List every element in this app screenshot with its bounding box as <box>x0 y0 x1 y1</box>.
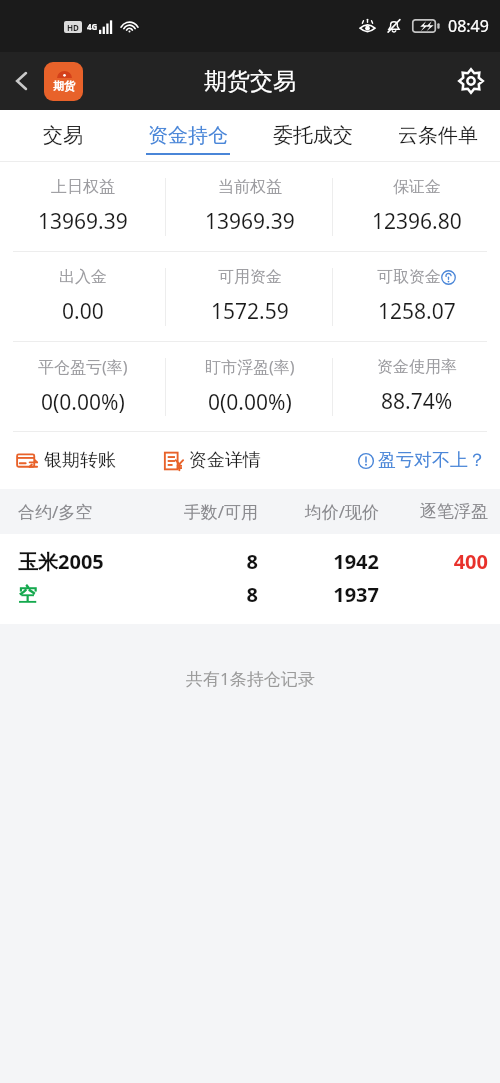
staticText: 盈亏对不上？ <box>378 449 486 472</box>
staticText: 可取资金 <box>377 267 441 287</box>
button[interactable]: 期货 app icon <box>44 62 83 101</box>
button[interactable]: 交易 <box>0 110 125 162</box>
button[interactable]: 资金详情 <box>162 432 323 489</box>
button[interactable]: 盈亏对不上？ <box>323 432 500 489</box>
staticText: HD <box>67 22 79 33</box>
staticText: 玉米2005 <box>18 548 145 575</box>
staticText: 委托成交 <box>273 123 353 148</box>
staticText: 期货 <box>53 79 75 93</box>
staticText: 0.00 <box>62 297 104 326</box>
staticText: 交易 <box>43 123 83 148</box>
staticText: 平仓盈亏(率) <box>38 356 128 378</box>
button[interactable]: Settings <box>442 52 500 110</box>
staticText: 1572.59 <box>211 297 289 326</box>
staticText: 盯市浮盈(率) <box>205 356 295 378</box>
staticText: 期货交易 <box>204 67 296 96</box>
button[interactable]: 玉米2005 <box>0 534 500 624</box>
staticText: 08:49 <box>448 15 489 37</box>
staticText: 逐笔浮盈 <box>387 501 488 522</box>
button[interactable]: 委托成交 <box>250 110 375 162</box>
staticText: 0(0.00%) <box>208 388 292 417</box>
staticText: 出入金 <box>59 267 107 287</box>
staticText: 上日权益 <box>51 177 115 197</box>
staticText: 8 <box>145 581 258 608</box>
staticText: 空 <box>18 583 145 607</box>
staticText: 1258.07 <box>378 297 456 326</box>
staticText: 合约/多空 <box>18 500 145 523</box>
staticText: 资金持仓 <box>148 123 228 148</box>
staticText: 共有1条持仓记录 <box>186 667 315 690</box>
staticText: 银期转账 <box>44 449 116 472</box>
staticText: 1942 <box>266 548 379 575</box>
button[interactable]: 资金持仓 <box>125 110 250 162</box>
staticText: 云条件单 <box>398 123 478 148</box>
staticText: 88.74% <box>381 387 453 416</box>
staticText: 手数/可用 <box>145 500 258 523</box>
staticText: 资金详情 <box>189 449 261 472</box>
button[interactable]: 云条件单 <box>375 110 500 162</box>
staticText: 保证金 <box>393 177 441 197</box>
staticText: 4G <box>87 21 98 32</box>
staticText: 均价/现价 <box>266 500 379 523</box>
staticText: 13969.39 <box>38 207 128 236</box>
button[interactable]: 银期转账 <box>0 432 162 489</box>
staticText: 1937 <box>266 581 379 608</box>
staticText: 13969.39 <box>205 207 295 236</box>
staticText: 8 <box>145 548 258 575</box>
staticText: 当前权益 <box>218 177 282 197</box>
button[interactable]: Back <box>0 59 44 103</box>
staticText: 可用资金 <box>218 267 282 287</box>
staticText: 0(0.00%) <box>41 388 125 417</box>
staticText: 12396.80 <box>372 207 462 236</box>
staticText: 资金使用率 <box>377 357 457 377</box>
staticText: 400 <box>387 548 488 575</box>
